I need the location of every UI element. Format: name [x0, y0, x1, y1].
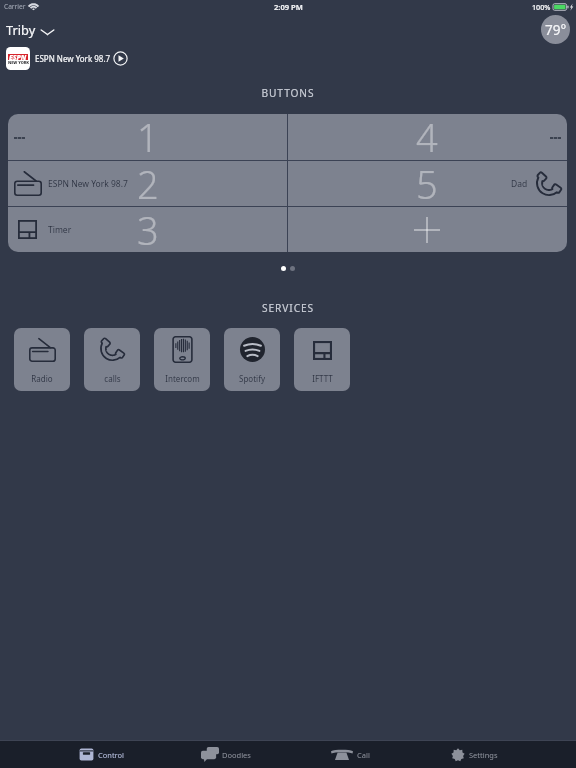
staticText: SERVICES: [0, 301, 576, 315]
staticText: 3: [137, 204, 159, 249]
staticText: Radio: [31, 373, 53, 384]
staticText: Triby: [6, 21, 36, 38]
button[interactable]: Add button: [287, 207, 567, 252]
button[interactable]: Doodles: [164, 741, 288, 768]
staticText: BUTTONS: [0, 86, 576, 100]
other: Choose device: [40, 24, 55, 39]
staticText: Intercom: [165, 373, 200, 384]
staticText: IFTTT: [312, 373, 333, 384]
button[interactable]: Radio: [14, 328, 70, 391]
button[interactable]: Triby: [6, 21, 55, 38]
button[interactable]: ESPN: [6, 47, 128, 70]
staticText: Call: [357, 750, 370, 760]
staticText: 5: [416, 158, 438, 203]
staticText: 100%: [532, 2, 551, 12]
button[interactable]: 2: [8, 161, 287, 206]
staticText: Doodles: [222, 750, 251, 760]
staticText: Control: [98, 750, 125, 760]
staticText: Timer: [48, 224, 72, 236]
staticText: calls: [104, 373, 121, 384]
button[interactable]: Call: [288, 741, 412, 768]
staticText: 2: [137, 158, 159, 203]
button[interactable]: Spotify: [224, 328, 280, 391]
staticText: ESPN New York 98.7: [35, 53, 111, 64]
button[interactable]: Control: [40, 741, 164, 768]
button[interactable]: 1: [8, 114, 287, 160]
button[interactable]: IFTTT: [294, 328, 350, 391]
button[interactable]: 5: [287, 161, 567, 206]
button[interactable]: 79°: [541, 15, 570, 44]
staticText: Carrier: [4, 2, 26, 11]
staticText: Dad: [511, 178, 528, 190]
button[interactable]: [290, 266, 295, 271]
button[interactable]: [281, 266, 286, 271]
button[interactable]: Intercom: [154, 328, 210, 391]
staticText: 2:09 PM: [274, 2, 303, 12]
staticText: Spotify: [239, 373, 265, 384]
button[interactable]: calls: [84, 328, 140, 391]
staticText: 1: [137, 114, 159, 157]
other: Add button: [414, 217, 440, 243]
button[interactable]: Settings: [412, 741, 536, 768]
staticText: 4: [416, 114, 438, 157]
staticText: NEW YORK: [8, 60, 30, 65]
button[interactable]: 3: [8, 207, 287, 252]
staticText: Settings: [469, 750, 498, 760]
staticText: ESPN: [9, 53, 27, 63]
staticText: 79°: [545, 21, 567, 39]
staticText: ESPN New York 98.7: [48, 178, 128, 190]
button[interactable]: 4: [287, 114, 567, 160]
other: Play: [113, 51, 128, 66]
